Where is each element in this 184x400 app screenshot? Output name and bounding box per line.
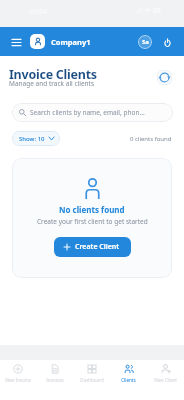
button[interactable]: Dashboard — [73, 360, 110, 400]
staticText: Manage and track all clients — [9, 79, 95, 88]
button[interactable]: Log out — [160, 35, 174, 49]
button[interactable]: Menu — [9, 35, 23, 49]
staticText: New Client — [154, 377, 177, 383]
button[interactable]: Refresh — [157, 70, 172, 85]
button[interactable]: Create Client — [54, 237, 131, 257]
button[interactable]: Account Sa — [138, 35, 152, 49]
staticText: Invoices — [46, 377, 64, 383]
staticText: Show: 10 — [19, 135, 45, 143]
button[interactable]: Profile — [30, 34, 45, 49]
staticText: New Invoice — [5, 377, 31, 383]
staticText: Clients — [121, 377, 136, 383]
button[interactable]: Search clients by name, email, phon... — [12, 103, 173, 122]
staticText: Sa — [142, 38, 149, 46]
staticText: Invoice Clients — [9, 66, 97, 83]
staticText: Dashboard — [80, 377, 104, 383]
staticText: Company1 — [51, 37, 91, 47]
staticText: Search clients by name, email, phon... — [30, 108, 145, 117]
button[interactable]: Show: 10 — [12, 131, 60, 146]
button[interactable]: New Client — [147, 360, 184, 400]
staticText: Create your first client to get started — [37, 217, 148, 226]
button[interactable]: Invoices — [36, 360, 73, 400]
button[interactable]: New Invoice — [0, 360, 36, 400]
button[interactable]: Clients — [110, 360, 147, 400]
staticText: 0 clients found — [130, 135, 172, 143]
staticText: Create Client — [75, 242, 120, 252]
staticText: No clients found — [59, 204, 125, 215]
